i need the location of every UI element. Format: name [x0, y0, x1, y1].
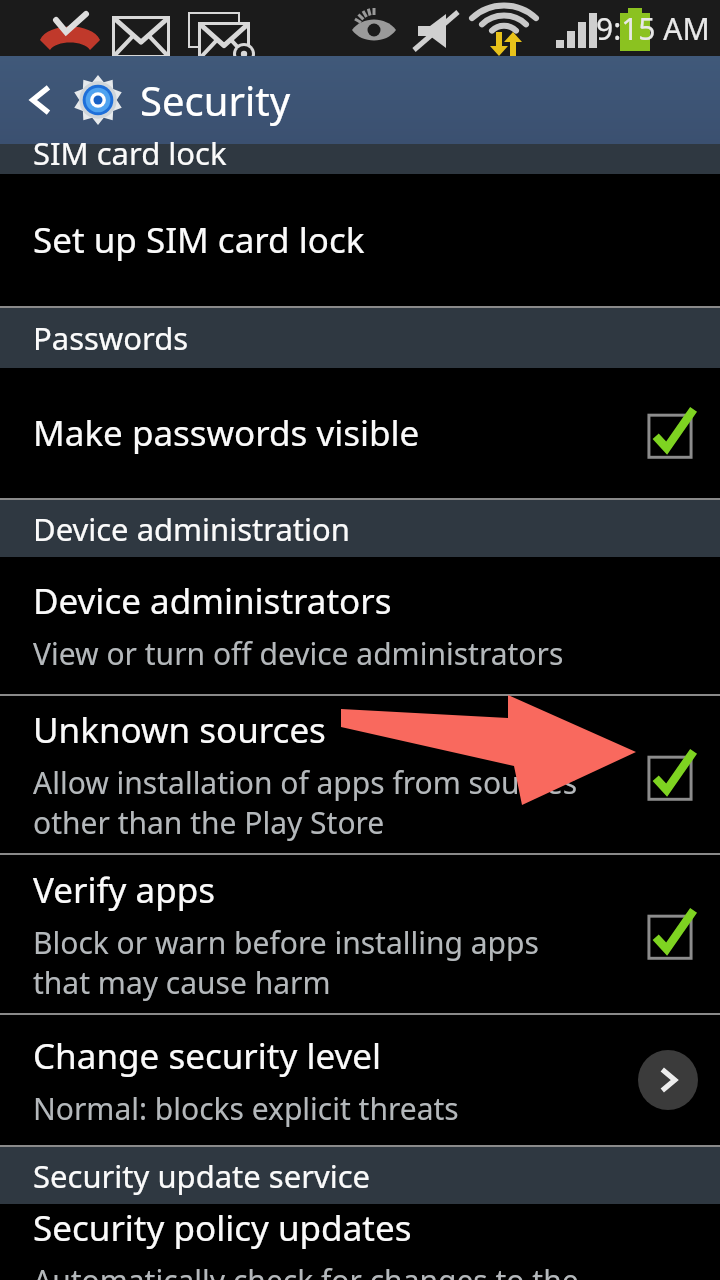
button[interactable]: Make passwords visible: [0, 368, 720, 498]
staticText: Make passwords visible: [33, 409, 420, 457]
staticText: Device administrators: [33, 577, 392, 625]
button[interactable]: Back: [14, 73, 68, 127]
staticText: Passwords: [33, 317, 189, 359]
staticText: Normal: blocks explicit threats: [33, 1088, 459, 1129]
staticText: Security policy updates: [33, 1204, 412, 1252]
staticText: Device administration: [33, 508, 350, 550]
staticText: Allow installation of apps from sources …: [33, 762, 578, 843]
staticText: View or turn off device administrators: [33, 633, 564, 674]
staticText: Automatically check for changes to the: [33, 1260, 579, 1280]
staticText: SIM card lock: [33, 132, 227, 162]
button[interactable]: Device administrators: [0, 557, 720, 694]
other: Make passwords visible checkbox: [642, 405, 698, 461]
staticText: Set up SIM card lock: [33, 216, 365, 264]
other: Verify apps checkbox: [642, 906, 698, 962]
staticText: 9:15 AM: [596, 8, 710, 49]
other: Unknown sources checkbox: [642, 747, 698, 803]
button[interactable]: Unknown sources: [0, 696, 720, 853]
staticText: Verify apps: [33, 866, 215, 914]
button[interactable]: Verify apps: [0, 855, 720, 1013]
staticText: Change security level: [33, 1032, 382, 1080]
button[interactable]: Open Change security level: [638, 1050, 698, 1110]
staticText: Security update service: [33, 1155, 371, 1197]
button[interactable]: Set up SIM card lock: [0, 174, 720, 306]
staticText: Unknown sources: [33, 706, 326, 754]
button[interactable]: Security policy updates: [0, 1204, 720, 1280]
staticText: Block or warn before installing apps tha…: [33, 922, 539, 1003]
button[interactable]: Change security level: [0, 1015, 720, 1145]
staticText: Security: [140, 73, 291, 127]
